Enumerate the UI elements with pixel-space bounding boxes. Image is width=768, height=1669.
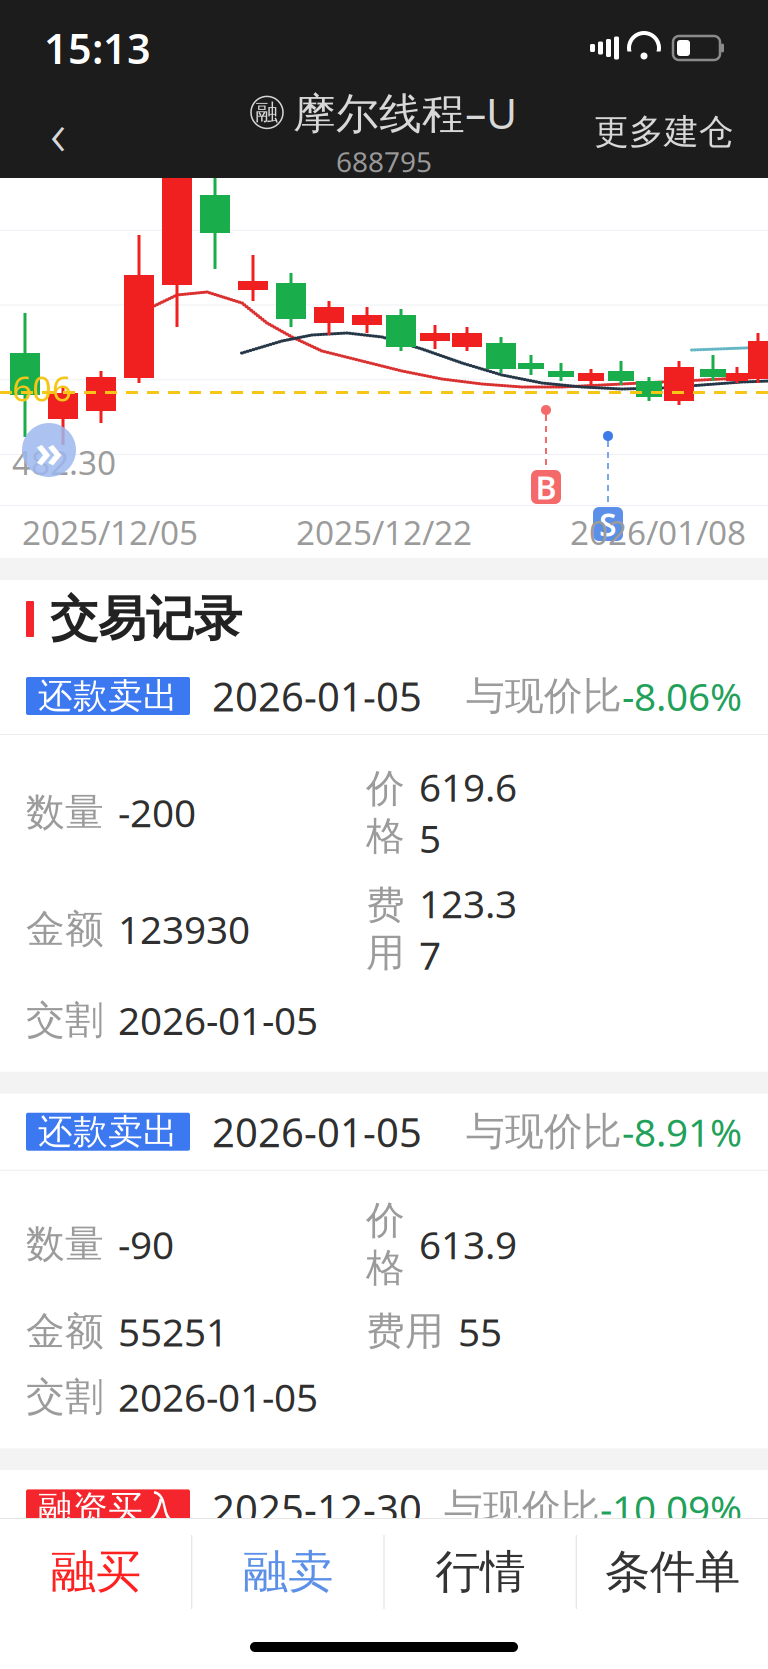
staticText: 与现价比	[466, 1108, 622, 1155]
staticText: 条件单	[605, 1544, 740, 1600]
staticText: 价格	[366, 1197, 405, 1292]
staticText: 数量	[26, 1220, 104, 1268]
staticText: 还款卖出	[38, 675, 178, 717]
staticText: 金额	[26, 905, 104, 953]
staticText: 2025/12/22	[296, 510, 472, 554]
staticText: 606	[458, 1573, 524, 1625]
staticText: 价格	[366, 765, 405, 860]
staticText: 融卖	[243, 1544, 333, 1600]
staticText: 价格	[366, 1575, 444, 1623]
staticText: 还款卖出	[38, 1110, 178, 1153]
button[interactable]: 融资买入	[0, 1470, 768, 1669]
staticText: »	[35, 420, 63, 480]
button[interactable]: 融买	[0, 1519, 191, 1625]
staticText: -8.91%	[622, 1106, 742, 1157]
staticText: 613.9	[419, 1219, 517, 1270]
staticText: S	[599, 503, 617, 545]
staticText: 费用	[366, 1308, 444, 1355]
staticText: 2026/01/08	[570, 510, 746, 554]
button[interactable]: Expand chart	[22, 423, 76, 477]
staticText: 交易记录	[50, 589, 242, 648]
staticText: -8.06%	[622, 670, 742, 722]
staticText: 交割	[26, 996, 104, 1044]
staticText: 688795	[336, 143, 432, 180]
staticText: -90	[118, 1219, 174, 1270]
staticText: 619.65	[419, 761, 517, 864]
staticText: 融买	[51, 1544, 141, 1600]
staticText: 数量	[26, 1575, 104, 1623]
staticText: 摩尔线程–U	[293, 84, 517, 141]
staticText: 数量	[26, 789, 104, 836]
staticText: 费用	[366, 1639, 405, 1669]
staticText: 行情	[435, 1544, 525, 1600]
staticText: 与现价比	[444, 1485, 600, 1532]
staticText: 2025/12/05	[22, 510, 198, 554]
staticText: 55	[458, 1306, 502, 1357]
staticText: B	[535, 466, 556, 508]
staticText: 2026-01-05	[212, 1105, 422, 1158]
staticText: 15:13	[44, 21, 151, 75]
staticText: ‹	[50, 91, 66, 173]
staticText: 2026-01-05	[212, 669, 422, 722]
button[interactable]: 融卖	[192, 1519, 383, 1625]
staticText: 55251	[118, 1306, 228, 1357]
button[interactable]: Back	[22, 96, 94, 168]
staticText: 与现价比	[466, 672, 622, 720]
staticText: 606	[12, 365, 72, 411]
staticText: 300	[118, 1573, 184, 1625]
button[interactable]: 还款卖出	[0, 658, 768, 1072]
staticText: 2026-01-05	[118, 994, 318, 1046]
button[interactable]: 更多建仓	[582, 100, 746, 164]
staticText: 123.37	[419, 878, 517, 980]
staticText: 更多建仓	[594, 111, 734, 153]
staticText: -10.09%	[600, 1483, 742, 1534]
staticText: 482.30	[12, 440, 116, 484]
staticText: 融资买入	[38, 1487, 178, 1530]
button[interactable]: 条件单	[577, 1519, 768, 1625]
button[interactable]: 还款卖出	[0, 1094, 768, 1448]
button[interactable]: 行情	[384, 1519, 576, 1625]
staticText: 2025-12-30	[212, 1482, 422, 1535]
staticText: 2026-01-05	[118, 1371, 318, 1422]
staticText: -200	[118, 787, 196, 838]
staticText: 融	[255, 98, 278, 126]
staticText: 金额	[26, 1308, 104, 1355]
staticText: 123930	[118, 903, 250, 955]
staticText: 交割	[26, 1373, 104, 1420]
staticText: 费用	[366, 881, 405, 976]
